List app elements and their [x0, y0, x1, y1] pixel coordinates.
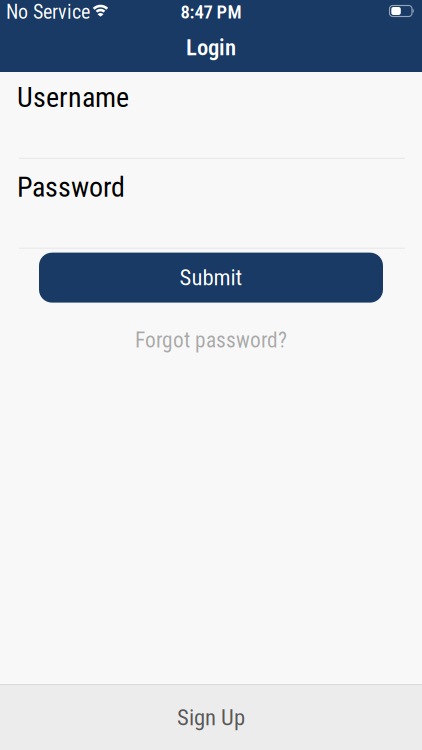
button[interactable]: Sign Up: [0, 685, 422, 750]
staticText: Password: [17, 171, 125, 204]
staticText: Forgot password?: [135, 328, 287, 353]
staticText: No Service: [6, 0, 90, 24]
staticText: 8:47 PM: [180, 1, 241, 23]
staticText: Sign Up: [177, 704, 245, 731]
staticText: Login: [186, 34, 236, 61]
button[interactable]: Submit: [39, 253, 383, 303]
staticText: Username: [17, 81, 129, 114]
button[interactable]: Username: [0, 81, 422, 159]
staticText: Submit: [179, 264, 242, 291]
button[interactable]: Forgot password?: [135, 328, 287, 353]
button[interactable]: Password: [0, 171, 422, 249]
